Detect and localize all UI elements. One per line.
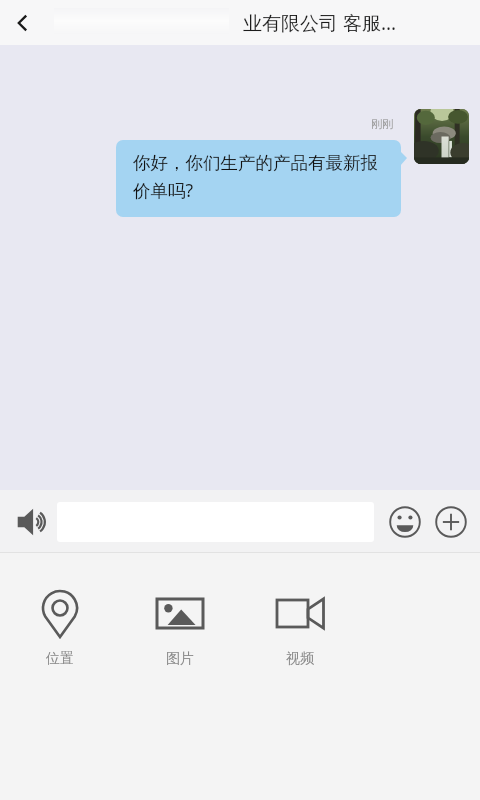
button[interactable]: 你好，你们生产的产品有最新报价单吗? bbox=[116, 140, 407, 217]
staticText: 业有限公司 客服... bbox=[243, 10, 397, 36]
button[interactable]: Emoji bbox=[385, 502, 425, 542]
button[interactable]: More bbox=[431, 502, 471, 542]
button[interactable]: Avatar bbox=[414, 109, 469, 164]
button[interactable]: 图片 bbox=[120, 581, 240, 672]
staticText: 刚刚 bbox=[371, 117, 393, 131]
button[interactable]: 视频 bbox=[240, 581, 360, 672]
staticText: 你好，你们生产的产品有最新报价单吗? bbox=[133, 152, 385, 202]
staticText: 视频 bbox=[286, 650, 314, 668]
staticText: 位置 bbox=[46, 650, 74, 668]
button[interactable]: 位置 bbox=[0, 581, 120, 672]
button[interactable]: Back bbox=[0, 0, 46, 45]
staticText: 图片 bbox=[166, 650, 194, 668]
button[interactable]: Voice input bbox=[10, 500, 54, 544]
